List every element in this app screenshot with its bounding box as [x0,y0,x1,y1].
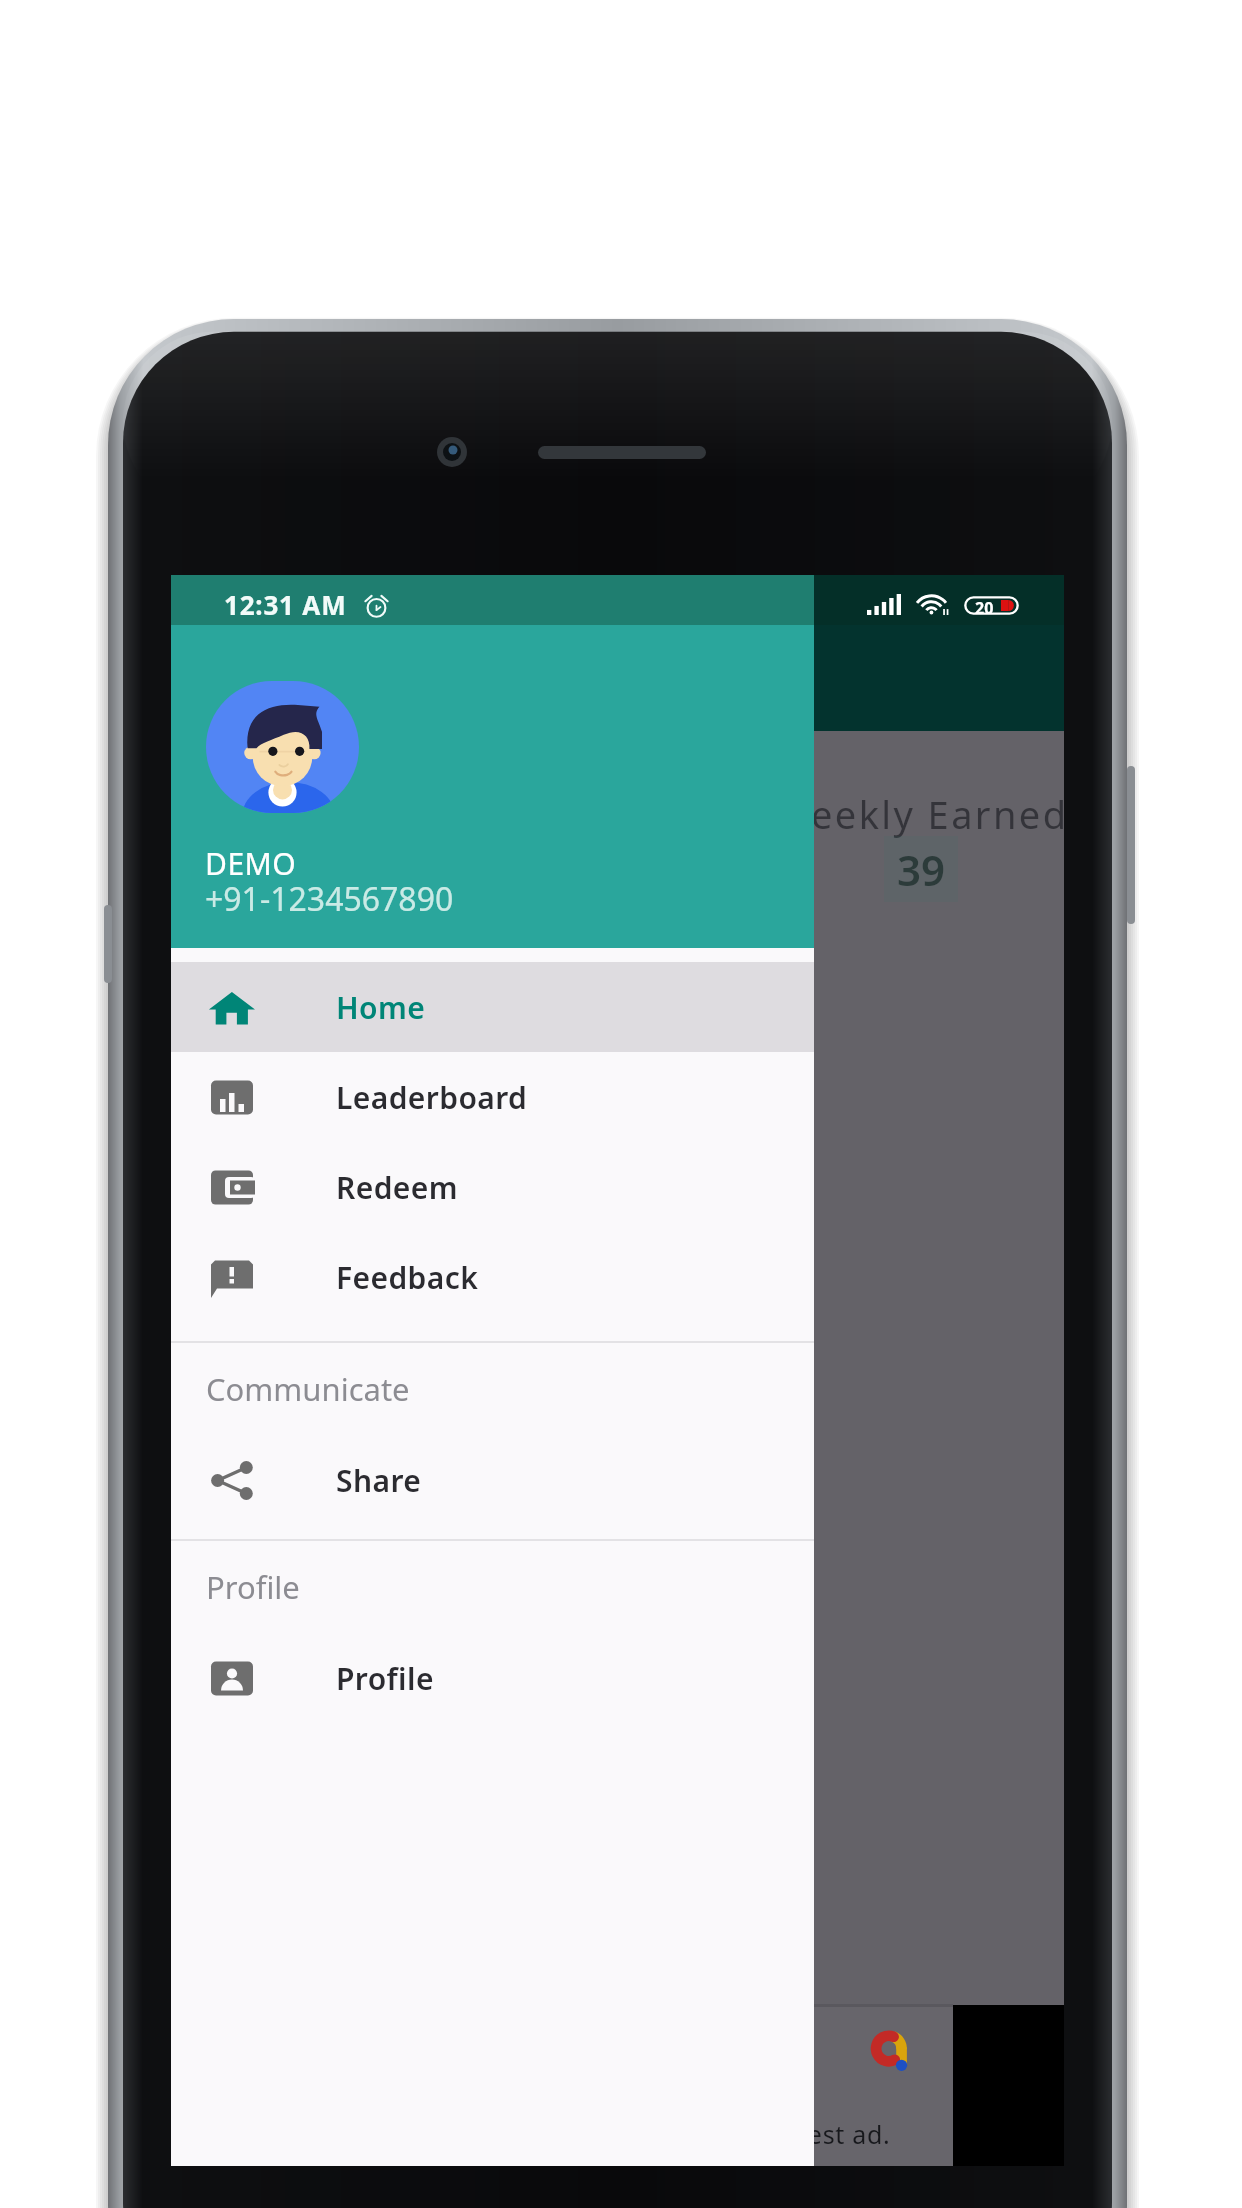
staticText: Profile [336,1658,434,1699]
staticText: 12:31 AM [224,587,347,622]
staticText: +91-1234567890 [205,877,454,921]
staticText: Feedback [336,1257,479,1298]
staticText: Share [336,1460,422,1501]
staticText: 39 [897,841,946,898]
button[interactable]: Share [171,1435,814,1525]
button[interactable]: Profile [171,1633,814,1723]
staticText: Redeem [336,1167,458,1208]
staticText: Home [336,987,426,1028]
staticText: Profile [206,1566,300,1608]
staticText: Communicate [206,1368,410,1410]
button[interactable]: DEMO [171,575,814,948]
button[interactable]: Leaderboard [171,1052,814,1142]
button[interactable]: Home [171,962,814,1052]
button[interactable]: Advertisement banner [171,2005,953,2166]
button[interactable]: Feedback [171,1232,814,1322]
button[interactable]: Close navigation drawer [814,575,1242,2166]
staticText: Leaderboard [336,1077,528,1118]
staticText: Weekly Earned [774,788,1069,840]
staticText: 20 [975,597,994,616]
staticText: DEMO [205,843,297,884]
staticText: Test ad. [795,2117,891,2151]
button[interactable]: Redeem [171,1142,814,1232]
